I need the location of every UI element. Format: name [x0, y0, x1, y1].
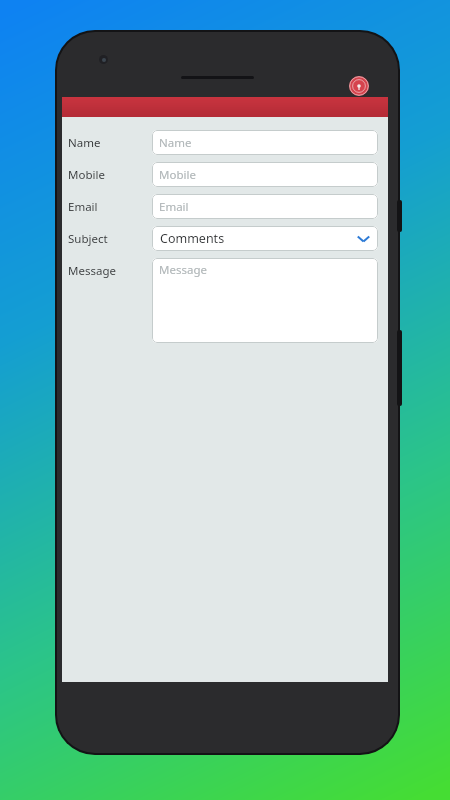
- staticText: Email: [159, 199, 189, 215]
- staticText: Message: [68, 263, 116, 279]
- staticText: Subject: [68, 231, 108, 247]
- button[interactable]: Email: [152, 194, 378, 219]
- staticText: Mobile: [159, 167, 196, 183]
- button[interactable]: Mobile: [152, 162, 378, 187]
- staticText: Name: [159, 135, 192, 151]
- other: Logo: [338, 76, 380, 96]
- button[interactable]: Name: [152, 130, 378, 155]
- other: Power button: [397, 200, 402, 232]
- staticText: Name: [68, 135, 101, 151]
- staticText: Message: [159, 262, 207, 278]
- button[interactable]: Comments: [152, 226, 378, 251]
- staticText: Email: [68, 199, 98, 215]
- staticText: Comments: [160, 230, 225, 247]
- other: Volume buttons: [397, 330, 402, 406]
- staticText: Mobile: [68, 167, 105, 183]
- button[interactable]: Message: [152, 258, 378, 343]
